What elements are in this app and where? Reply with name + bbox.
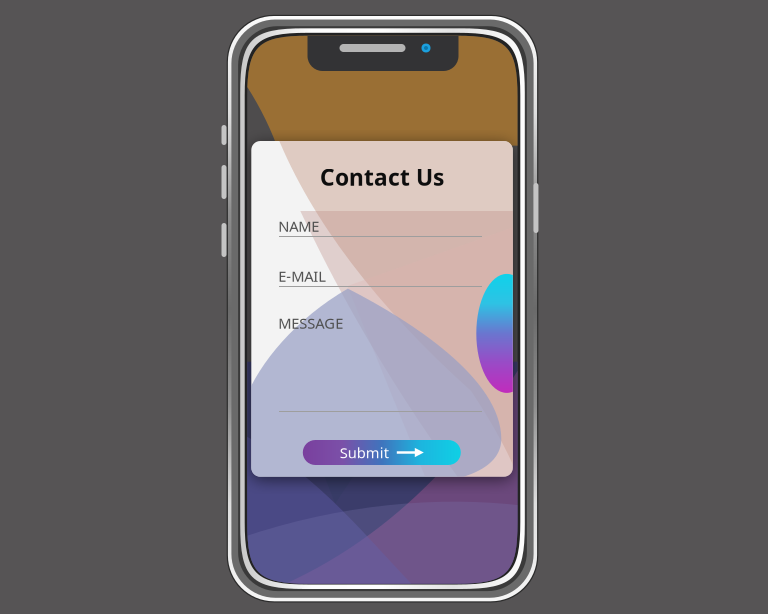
- button[interactable]: Submit: [303, 440, 461, 465]
- staticText: Submit: [340, 443, 389, 462]
- staticText: Contact Us: [320, 162, 444, 192]
- staticText: MESSAGE: [278, 313, 343, 333]
- staticText: E-MAIL: [278, 266, 326, 286]
- staticText: NAME: [278, 216, 319, 236]
